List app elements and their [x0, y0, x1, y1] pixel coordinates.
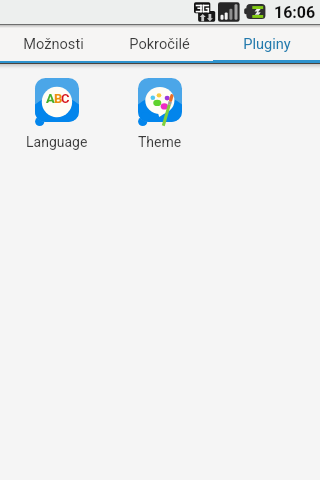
button[interactable]: Theme — [108, 78, 211, 150]
staticText: Pluginy — [243, 35, 291, 52]
staticText: Pokročilé — [129, 35, 190, 52]
staticText: B — [54, 91, 61, 106]
button[interactable]: Možnosti — [0, 25, 106, 60]
staticText: Language — [26, 134, 88, 150]
staticText: A — [46, 91, 54, 106]
button[interactable]: A — [5, 78, 108, 150]
staticText: C — [61, 91, 69, 106]
staticText: Možnosti — [23, 35, 84, 52]
button[interactable]: Pokročilé — [106, 25, 213, 60]
staticText: 16:06 — [274, 3, 316, 22]
staticText: Theme — [138, 134, 182, 150]
button[interactable]: Pluginy — [213, 25, 320, 60]
